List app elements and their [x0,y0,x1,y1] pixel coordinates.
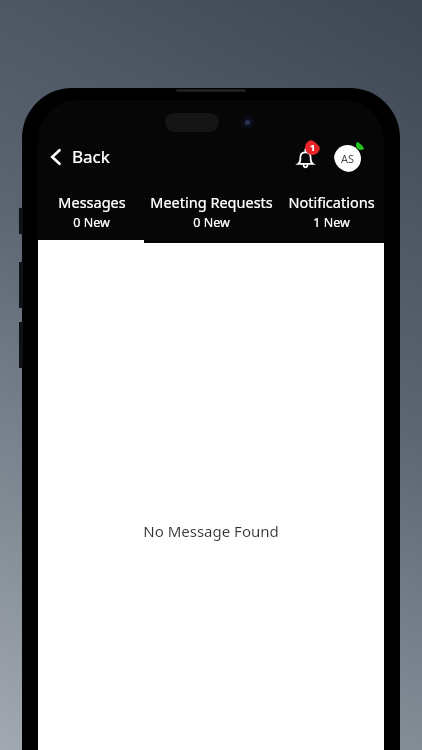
button[interactable]: Notifications [288,139,322,173]
button[interactable]: Notifications [278,188,384,235]
button[interactable]: Profile [334,140,366,172]
staticText: 0 New [193,214,230,231]
staticText: Meeting Requests [150,192,273,212]
staticText: AS [341,151,355,166]
staticText: 1 New [313,214,350,231]
staticText: 0 New [73,214,110,231]
staticText: Messages [58,192,126,212]
staticText: No Message Found [143,521,279,541]
button[interactable]: Messages [38,188,145,235]
button[interactable]: Back [44,141,114,172]
staticText: Notifications [288,192,375,212]
staticText: Back [72,145,110,168]
button[interactable]: Meeting Requests [145,188,278,235]
staticText: 1 [310,141,316,154]
